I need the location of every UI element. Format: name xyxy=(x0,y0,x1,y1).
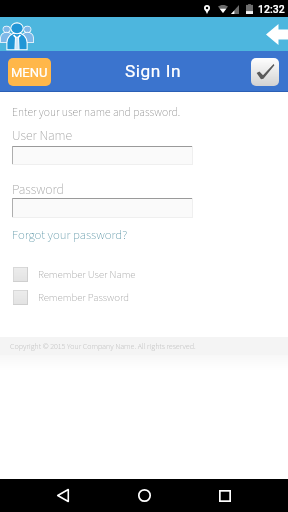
staticText: Sign In xyxy=(125,61,182,81)
button[interactable]: Remember User Name xyxy=(0,267,288,282)
staticText: Remember User Name xyxy=(38,267,136,282)
button[interactable]: Remember Password xyxy=(0,290,288,305)
button[interactable]: Forgot your password? xyxy=(12,226,128,244)
button[interactable] xyxy=(12,198,193,218)
button[interactable]: Home xyxy=(120,479,168,512)
button[interactable]: MENU xyxy=(8,58,51,86)
button[interactable]: Back xyxy=(39,479,87,512)
button[interactable]: Submit xyxy=(251,58,279,86)
button[interactable]: Recent apps xyxy=(201,479,249,512)
staticText: 12:32 xyxy=(258,3,285,15)
staticText: Password xyxy=(12,180,64,199)
button[interactable]: Back xyxy=(266,24,288,45)
staticText: Copyright © 2015 Your Company Name. All … xyxy=(10,341,196,352)
staticText: MENU xyxy=(11,65,48,80)
button[interactable] xyxy=(12,146,193,165)
staticText: Forgot your password? xyxy=(12,226,128,244)
staticText: User Name xyxy=(12,126,73,145)
staticText: Remember Password xyxy=(38,290,130,305)
staticText: Enter your user name and password. xyxy=(12,104,181,121)
button[interactable]: Contacts xyxy=(1,22,33,50)
